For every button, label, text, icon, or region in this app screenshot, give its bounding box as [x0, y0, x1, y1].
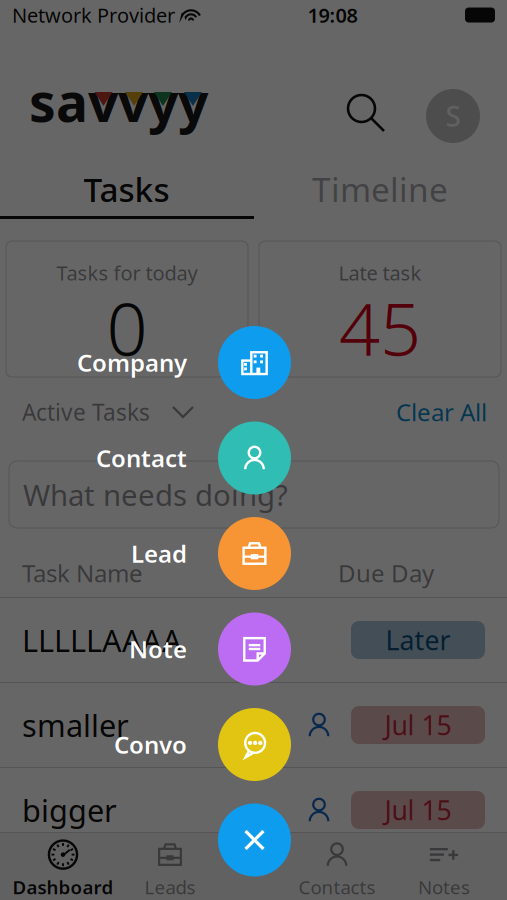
staticText: Convo: [114, 729, 187, 760]
staticText: Jul 15: [384, 707, 451, 743]
staticText: Dashboard: [12, 875, 113, 899]
staticText: LLLLLAAAA: [22, 620, 182, 660]
staticText: Clear All: [396, 396, 487, 428]
button[interactable]: Close menu: [0, 803, 507, 876]
button[interactable]: Notes: [389, 840, 499, 898]
staticText: S: [445, 97, 460, 135]
button[interactable]: LLLLLAAAA: [0, 598, 507, 682]
button[interactable]: Lead: [0, 517, 507, 590]
button[interactable]: Timeline: [253, 162, 507, 216]
staticText: 19:08: [307, 2, 357, 28]
staticText: bigger: [22, 790, 117, 830]
button[interactable]: Tasks: [0, 162, 253, 216]
button[interactable]: Contacts: [282, 840, 392, 898]
button[interactable]: Company: [0, 326, 507, 399]
button[interactable]: Contact: [0, 421, 507, 494]
button[interactable]: smaller: [0, 683, 507, 767]
button[interactable]: Dashboard: [8, 840, 118, 898]
staticText: Task Name: [22, 557, 143, 589]
staticText: Late task: [338, 259, 421, 286]
staticText: Active Tasks: [22, 397, 150, 427]
staticText: Contact: [96, 442, 187, 474]
staticText: Network Provider: [12, 2, 175, 28]
staticText: Tasks: [83, 167, 169, 211]
button[interactable]: Convo: [0, 708, 507, 781]
staticText: Contacts: [298, 875, 375, 899]
staticText: Lead: [131, 538, 187, 569]
staticText: Tasks for today: [56, 259, 197, 286]
staticText: Company: [77, 347, 187, 378]
button[interactable]: Leads: [115, 840, 225, 898]
button[interactable]: Clear All: [396, 392, 487, 432]
staticText: Note: [129, 633, 187, 665]
button[interactable]: bigger: [0, 768, 507, 852]
staticText: Timeline: [312, 167, 448, 211]
button[interactable]: What needs doing?: [9, 461, 499, 528]
staticText: 0: [106, 280, 147, 376]
staticText: Due Day: [338, 557, 434, 589]
staticText: What needs doing?: [23, 475, 288, 514]
staticText: Later: [385, 622, 450, 658]
staticText: savvyy: [29, 66, 208, 137]
staticText: Jul 15: [384, 792, 451, 828]
button[interactable]: Search: [342, 89, 390, 137]
staticText: Notes: [418, 875, 470, 899]
staticText: 45: [339, 280, 421, 376]
button[interactable]: Active Tasks: [22, 392, 194, 432]
staticText: smaller: [22, 705, 129, 745]
button[interactable]: Note: [0, 612, 507, 685]
button[interactable]: Profile: [426, 89, 480, 143]
staticText: Leads: [144, 875, 195, 899]
